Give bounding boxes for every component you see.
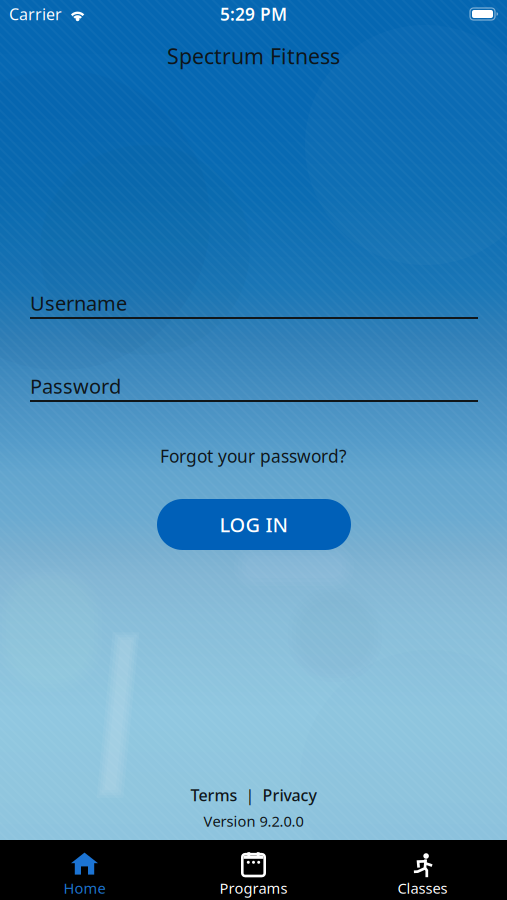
staticText: Programs: [219, 878, 287, 898]
button[interactable]: Programs: [169, 840, 338, 900]
staticText: Privacy: [262, 784, 316, 806]
staticText: Home: [63, 878, 105, 898]
staticText: Forgot your password?: [160, 444, 347, 467]
staticText: LOG IN: [219, 511, 288, 538]
button[interactable]: Home: [0, 840, 169, 900]
staticText: Password: [30, 373, 121, 399]
staticText: Version 9.2.0.0: [203, 811, 303, 831]
button[interactable]: Forgot your password?: [0, 445, 507, 467]
button[interactable]: Privacy: [262, 784, 316, 806]
button[interactable]: LOG IN: [157, 499, 351, 550]
staticText: |: [237, 784, 262, 806]
staticText: 5:29 PM: [220, 2, 287, 25]
staticText: Spectrum Fitness: [167, 42, 340, 70]
staticText: Carrier: [9, 3, 62, 25]
staticText: Terms: [190, 784, 237, 806]
button[interactable]: Terms: [190, 784, 237, 806]
staticText: Classes: [397, 878, 447, 898]
staticText: Username: [30, 290, 127, 316]
button[interactable]: Classes: [338, 840, 507, 900]
